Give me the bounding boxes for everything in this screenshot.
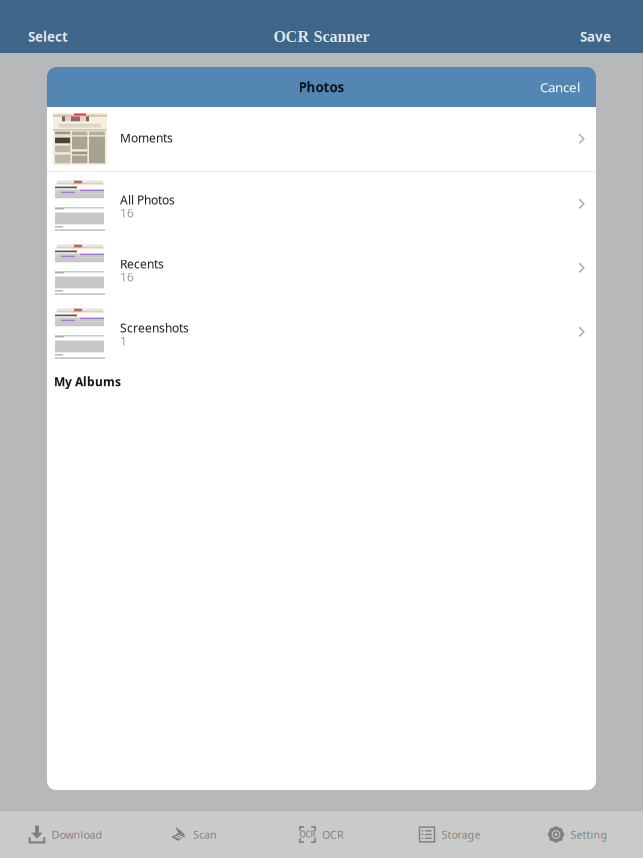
button[interactable]: Cancel bbox=[532, 71, 588, 103]
button[interactable]: Save bbox=[572, 22, 619, 51]
staticText: Screenshots bbox=[120, 320, 189, 336]
staticText: Storage bbox=[441, 827, 480, 842]
button[interactable]: Setting bbox=[513, 811, 641, 858]
staticText: Select bbox=[28, 28, 68, 45]
staticText: Cancel bbox=[540, 78, 580, 96]
button[interactable]: Screenshots bbox=[47, 300, 596, 364]
staticText: Setting bbox=[570, 827, 607, 842]
button[interactable]: Recents bbox=[47, 236, 596, 300]
button[interactable]: Download bbox=[1, 811, 129, 858]
staticText: Download bbox=[51, 827, 102, 842]
staticText: Save bbox=[580, 28, 611, 45]
button[interactable]: Storage bbox=[385, 811, 513, 858]
staticText: 1 bbox=[120, 333, 127, 349]
staticText: Scan bbox=[193, 827, 217, 842]
staticText: 16 bbox=[120, 269, 134, 285]
button[interactable]: Select bbox=[20, 22, 76, 51]
staticText: My Albums bbox=[54, 373, 121, 389]
staticText: Photos bbox=[298, 78, 344, 96]
staticText: OCR bbox=[322, 827, 344, 842]
staticText: OCR bbox=[299, 829, 315, 840]
button[interactable]: Scan bbox=[129, 811, 257, 858]
button[interactable]: All Photos bbox=[47, 172, 596, 236]
staticText: Moments bbox=[120, 130, 173, 146]
staticText: Recents bbox=[120, 256, 164, 272]
staticText: 16 bbox=[120, 205, 134, 221]
staticText: OCR Scanner bbox=[273, 28, 369, 45]
button[interactable]: OCR bbox=[257, 811, 385, 858]
staticText: All Photos bbox=[120, 192, 175, 208]
button[interactable]: Moments bbox=[47, 107, 596, 171]
